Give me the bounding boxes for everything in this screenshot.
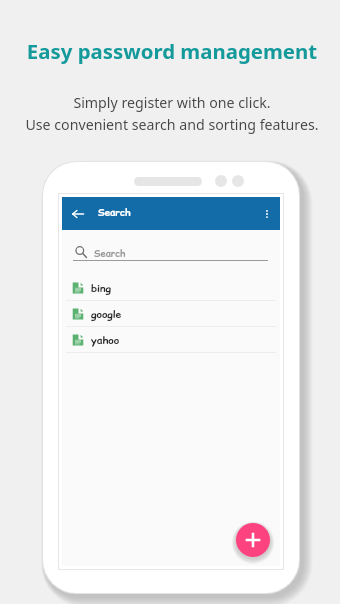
staticText: yahoo [91, 333, 120, 347]
button[interactable]: google [62, 301, 280, 326]
staticText: Use convenient search and sorting featur… [25, 115, 319, 134]
button[interactable]: Back [67, 197, 89, 230]
button[interactable]: Add [236, 523, 270, 557]
staticText: google [91, 307, 122, 321]
staticText: Search [94, 247, 126, 260]
staticText: bing [91, 281, 111, 295]
staticText: Easy password management [2, 37, 340, 65]
staticText: Search [98, 206, 131, 219]
button[interactable]: bing [62, 275, 280, 300]
button[interactable]: yahoo [62, 327, 280, 352]
button[interactable]: More options [258, 197, 276, 230]
staticText: Simply register with one click. [73, 93, 271, 112]
